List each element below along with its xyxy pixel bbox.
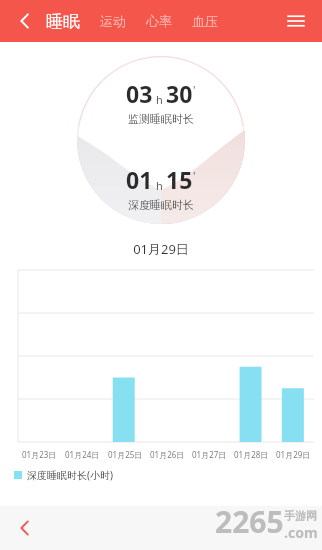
staticText: 深度睡眠时长 <box>128 198 194 212</box>
button[interactable]: 睡眠 <box>44 5 82 38</box>
button[interactable]: Back <box>10 6 40 36</box>
button[interactable]: Back <box>8 511 42 545</box>
staticText: 03 <box>126 78 153 109</box>
staticText: 2265 <box>215 501 284 542</box>
staticText: 01月25日 <box>108 449 143 460</box>
staticText: 运动 <box>100 13 126 29</box>
staticText: 01月23日 <box>22 449 57 460</box>
staticText: h <box>156 178 163 193</box>
staticText: 深度睡眠时长(小时) <box>27 468 113 482</box>
staticText: 15 <box>166 164 193 195</box>
staticText: 01月29日 <box>276 449 311 460</box>
staticText: 01 <box>126 164 153 195</box>
staticText: 01月26日 <box>150 449 185 460</box>
staticText: ' <box>193 168 196 183</box>
staticText: 监测睡眠时长 <box>128 112 194 126</box>
staticText: 手游网 <box>284 509 317 523</box>
staticText: 01月27日 <box>192 449 227 460</box>
staticText: 血压 <box>192 13 218 29</box>
button[interactable]: 03 <box>77 56 245 224</box>
button[interactable]: 血压 <box>190 7 220 35</box>
button[interactable]: 心率 <box>144 7 174 35</box>
staticText: 01月24日 <box>65 449 100 460</box>
staticText: 01月29日 <box>0 240 322 258</box>
staticText: 睡眠 <box>46 11 80 32</box>
staticText: .com <box>284 523 318 542</box>
staticText: 心率 <box>146 13 172 29</box>
staticText: h <box>156 92 163 107</box>
staticText: 01月28日 <box>234 449 269 460</box>
button[interactable]: 深度睡眠时长(小时) <box>14 468 322 482</box>
button[interactable]: Menu <box>280 5 312 37</box>
staticText: 30 <box>166 78 193 109</box>
staticText: ' <box>193 82 196 97</box>
button[interactable]: 运动 <box>98 7 128 35</box>
